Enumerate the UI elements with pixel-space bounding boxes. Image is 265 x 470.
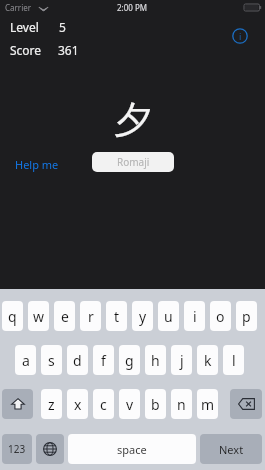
button[interactable]: x: [67, 389, 88, 419]
staticText: b: [151, 395, 160, 414]
button[interactable]: Help me: [13, 155, 61, 174]
staticText: Score: [10, 42, 42, 58]
button[interactable]: Info: [229, 25, 251, 47]
staticText: 夕: [114, 96, 152, 144]
staticText: o: [216, 307, 225, 326]
button[interactable]: w: [28, 301, 49, 331]
staticText: f: [101, 351, 106, 370]
staticText: m: [201, 395, 215, 414]
staticText: h: [151, 351, 160, 370]
staticText: c: [100, 395, 107, 414]
staticText: d: [73, 351, 82, 370]
staticText: e: [61, 307, 69, 326]
staticText: w: [33, 307, 45, 326]
button[interactable]: n: [171, 389, 192, 419]
button[interactable]: v: [119, 389, 140, 419]
staticText: z: [48, 395, 55, 414]
staticText: p: [242, 307, 251, 326]
staticText: Carrier: [5, 2, 32, 13]
button[interactable]: a: [15, 345, 36, 375]
staticText: v: [126, 395, 134, 414]
staticText: 5: [59, 19, 66, 35]
staticText: k: [204, 351, 212, 370]
staticText: j: [180, 351, 184, 370]
button[interactable]: j: [171, 345, 192, 375]
button[interactable]: u: [158, 301, 179, 331]
button[interactable]: r: [80, 301, 101, 331]
staticText: 123: [8, 442, 26, 456]
staticText: Next: [219, 442, 244, 457]
staticText: space: [117, 442, 147, 457]
button[interactable]: c: [93, 389, 114, 419]
button[interactable]: l: [223, 345, 244, 375]
button[interactable]: m: [197, 389, 218, 419]
button[interactable]: b: [145, 389, 166, 419]
staticText: g: [125, 351, 134, 370]
button[interactable]: p: [236, 301, 257, 331]
staticText: r: [88, 307, 94, 326]
staticText: l: [232, 351, 236, 370]
staticText: i: [193, 307, 197, 326]
staticText: Romaji: [117, 155, 150, 169]
button[interactable]: Next: [200, 434, 262, 464]
staticText: x: [74, 395, 82, 414]
button[interactable]: h: [145, 345, 166, 375]
staticText: Help me: [15, 157, 59, 172]
button[interactable]: i: [184, 301, 205, 331]
staticText: q: [8, 307, 17, 326]
staticText: y: [139, 307, 147, 326]
button[interactable]: k: [197, 345, 218, 375]
button[interactable]: s: [41, 345, 62, 375]
staticText: n: [177, 395, 186, 414]
button[interactable]: 123: [2, 434, 32, 464]
button[interactable]: g: [119, 345, 140, 375]
button[interactable]: z: [41, 389, 62, 419]
button[interactable]: q: [2, 301, 23, 331]
button[interactable]: e: [54, 301, 75, 331]
button[interactable]: space: [68, 434, 196, 464]
button[interactable]: d: [67, 345, 88, 375]
button[interactable]: y: [132, 301, 153, 331]
button[interactable]: Romaji: [92, 152, 174, 172]
button[interactable]: Change keyboard: [36, 434, 64, 464]
button[interactable]: o: [210, 301, 231, 331]
staticText: s: [48, 351, 55, 370]
staticText: Level: [10, 19, 39, 35]
button[interactable]: Shift: [2, 389, 33, 419]
staticText: a: [22, 351, 30, 370]
staticText: 361: [58, 42, 79, 58]
staticText: t: [114, 307, 120, 326]
button[interactable]: t: [106, 301, 127, 331]
staticText: i: [239, 30, 242, 42]
button[interactable]: Backspace: [230, 389, 262, 419]
button[interactable]: f: [93, 345, 114, 375]
staticText: u: [164, 307, 173, 326]
staticText: 2:00 PM: [117, 2, 148, 13]
